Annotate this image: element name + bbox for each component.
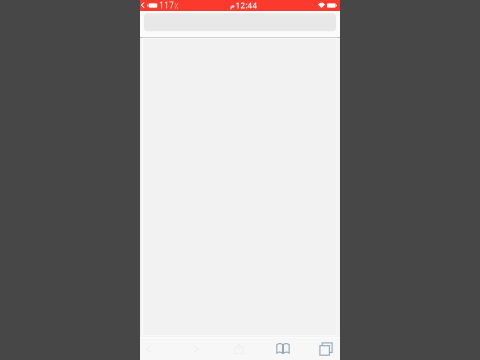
- staticText: م: [229, 2, 234, 9]
- button[interactable]: Back: [131, 338, 167, 360]
- staticText: 117٪: [159, 0, 178, 11]
- button[interactable]: Bookmarks: [265, 338, 301, 360]
- button[interactable]: Tabs: [308, 338, 344, 360]
- staticText: 12:44: [236, 0, 258, 11]
- button[interactable]: [140, 13, 340, 31]
